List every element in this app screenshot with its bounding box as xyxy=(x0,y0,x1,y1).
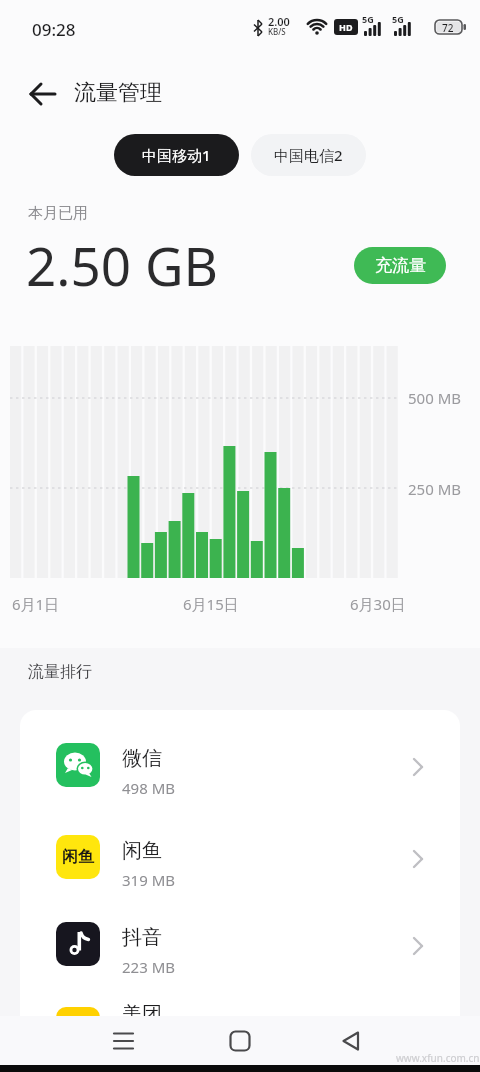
staticText: 223 MB xyxy=(122,957,175,977)
staticText: 美团 xyxy=(122,1002,162,1027)
staticText: 闲鱼 xyxy=(62,847,94,867)
button[interactable]: 闲鱼 xyxy=(36,819,444,907)
staticText: 2.50 GB xyxy=(26,229,218,301)
staticText: 中国移动1 xyxy=(142,145,211,165)
staticText: 流量排行 xyxy=(28,662,92,682)
staticText: 6月1日 xyxy=(12,594,60,614)
staticText: 498 MB xyxy=(122,778,175,798)
button[interactable]: 中国移动1 xyxy=(114,134,239,176)
staticText: 500 MB xyxy=(408,388,461,408)
button[interactable]: 充流量 xyxy=(354,247,446,284)
staticText: 250 MB xyxy=(408,479,461,499)
staticText: 微信 xyxy=(122,746,162,771)
button[interactable]: 微信 xyxy=(36,727,444,815)
staticText: www.xfun.com.cn xyxy=(396,1051,480,1065)
button[interactable] xyxy=(104,1024,144,1058)
staticText: 充流量 xyxy=(375,255,426,276)
staticText: 抖音 xyxy=(122,925,162,950)
staticText: 6月15日 xyxy=(183,594,239,614)
staticText: 中国电信2 xyxy=(274,145,343,165)
staticText: 5G xyxy=(362,13,374,25)
button[interactable]: 抖音 xyxy=(36,906,444,994)
staticText: 流量管理 xyxy=(74,79,162,107)
staticText: 闲鱼 xyxy=(122,838,162,863)
staticText: 5G xyxy=(392,13,404,25)
button[interactable]: 中国电信2 xyxy=(251,134,366,176)
staticText: 72 xyxy=(442,21,454,35)
staticText: 09:28 xyxy=(32,18,76,41)
staticText: KB/S xyxy=(268,26,286,37)
button[interactable] xyxy=(332,1024,372,1058)
button[interactable] xyxy=(26,80,60,108)
staticText: 6月30日 xyxy=(350,594,406,614)
staticText: HD xyxy=(339,21,353,33)
staticText: 本月已用 xyxy=(28,204,88,223)
button[interactable] xyxy=(220,1024,260,1058)
staticText: 319 MB xyxy=(122,870,175,890)
staticText: 2.00 xyxy=(268,14,290,29)
